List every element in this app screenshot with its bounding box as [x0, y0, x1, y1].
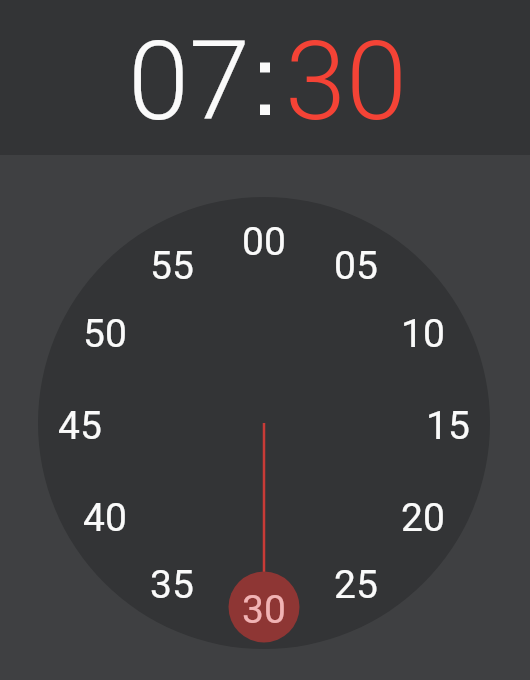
button[interactable]: 07: [128, 17, 251, 146]
staticText: 05: [334, 243, 378, 289]
staticText: 00: [242, 219, 286, 265]
staticText: 40: [83, 495, 127, 541]
button[interactable]: 30: [224, 580, 304, 640]
button[interactable]: 25: [316, 555, 396, 615]
button[interactable]: 05: [316, 236, 396, 296]
button[interactable]: 40: [65, 488, 145, 548]
staticText: 55: [150, 243, 194, 289]
button[interactable]: 10: [383, 304, 463, 364]
staticText: 20: [401, 495, 445, 541]
button[interactable]: 20: [383, 488, 463, 548]
button[interactable]: 55: [132, 236, 212, 296]
staticText: 50: [83, 311, 127, 357]
staticText: 25: [334, 562, 378, 608]
staticText: 10: [401, 311, 445, 357]
button[interactable]: 30: [285, 17, 408, 146]
staticText: 30: [242, 587, 286, 633]
button[interactable]: 45: [40, 396, 120, 456]
staticText: 45: [58, 403, 102, 449]
button[interactable]: 00: [224, 212, 304, 272]
button[interactable]: 50: [65, 304, 145, 364]
button[interactable]: 15: [408, 396, 488, 456]
button[interactable]: 35: [132, 555, 212, 615]
staticText: 35: [150, 562, 194, 608]
staticText: 15: [426, 403, 470, 449]
